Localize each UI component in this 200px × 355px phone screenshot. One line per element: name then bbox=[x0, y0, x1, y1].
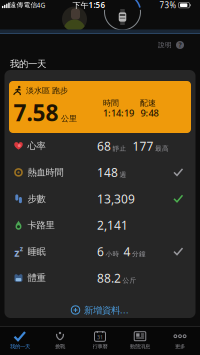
staticText: 卡路里 bbox=[27, 219, 54, 231]
staticText: 177 bbox=[132, 138, 153, 154]
button[interactable]: 個人資料 bbox=[62, 6, 87, 31]
staticText: 行事曆 bbox=[92, 343, 107, 350]
button[interactable]: 步數 bbox=[4, 186, 195, 212]
button[interactable]: 裝置同步 bbox=[102, 0, 142, 34]
staticText: 淡水區 跑步 bbox=[26, 86, 68, 95]
staticText: 體重 bbox=[27, 272, 45, 284]
staticText: 動態消息 bbox=[130, 343, 150, 350]
staticText: 熱血時間 bbox=[27, 167, 63, 178]
button[interactable]: 新增資料... bbox=[40, 301, 160, 319]
staticText: 時間 bbox=[103, 98, 119, 108]
staticText: 心率 bbox=[27, 140, 45, 152]
staticText: 分鐘 bbox=[132, 250, 146, 258]
staticText: 遠傳電信 bbox=[9, 1, 37, 9]
staticText: 6 bbox=[97, 244, 104, 259]
staticText: 我的一天 bbox=[10, 343, 30, 350]
staticText: 小時 bbox=[105, 250, 119, 258]
staticText: 公里 bbox=[61, 114, 77, 123]
staticText: ? bbox=[178, 41, 181, 49]
button[interactable]: 卡路里 bbox=[4, 212, 195, 238]
button[interactable]: 熱血時間 bbox=[4, 159, 195, 186]
staticText: 更多 bbox=[175, 343, 185, 350]
button[interactable]: 體重 bbox=[4, 265, 195, 291]
staticText: 4G bbox=[36, 1, 45, 10]
staticText: 7.58 bbox=[13, 97, 58, 127]
button[interactable]: 挑戰 bbox=[41, 327, 79, 354]
staticText: 新增資料... bbox=[84, 304, 129, 316]
staticText: 我的一天 bbox=[10, 58, 46, 70]
staticText: 週 bbox=[119, 171, 126, 179]
staticText: 148 bbox=[97, 164, 118, 180]
staticText: z bbox=[20, 244, 23, 253]
staticText: 步數 bbox=[27, 193, 45, 205]
button[interactable]: 淡水區 跑步 bbox=[9, 81, 191, 133]
staticText: 最高 bbox=[155, 144, 169, 152]
button[interactable]: 31 bbox=[81, 327, 119, 354]
staticText: 13,309 bbox=[97, 191, 135, 207]
staticText: 1:14:19 bbox=[103, 107, 134, 119]
button[interactable]: 更多 bbox=[161, 327, 199, 354]
button[interactable]: 動態消息 bbox=[121, 327, 159, 354]
staticText: 68 bbox=[97, 138, 111, 154]
button[interactable]: 說明 bbox=[154, 39, 188, 51]
staticText: 9:48 bbox=[140, 107, 158, 119]
staticText: 靜止 bbox=[112, 144, 126, 152]
staticText: 2,141 bbox=[97, 217, 128, 233]
staticText: 配速 bbox=[140, 98, 156, 108]
button[interactable]: 我的一天 bbox=[1, 327, 39, 354]
staticText: 73% bbox=[159, 0, 176, 10]
staticText: 88.2 bbox=[97, 270, 121, 286]
staticText: 睡眠 bbox=[27, 246, 45, 257]
staticText: 說明 bbox=[158, 41, 172, 49]
staticText: 4 bbox=[123, 244, 130, 259]
button[interactable]: z bbox=[4, 238, 195, 265]
staticText: 挑戰 bbox=[55, 343, 65, 350]
staticText: 31 bbox=[97, 334, 103, 341]
staticText: 公斤 bbox=[122, 276, 136, 284]
button[interactable]: 心率 bbox=[4, 133, 195, 159]
staticText: 下午1:56 bbox=[72, 0, 105, 10]
staticText: z bbox=[14, 245, 19, 260]
